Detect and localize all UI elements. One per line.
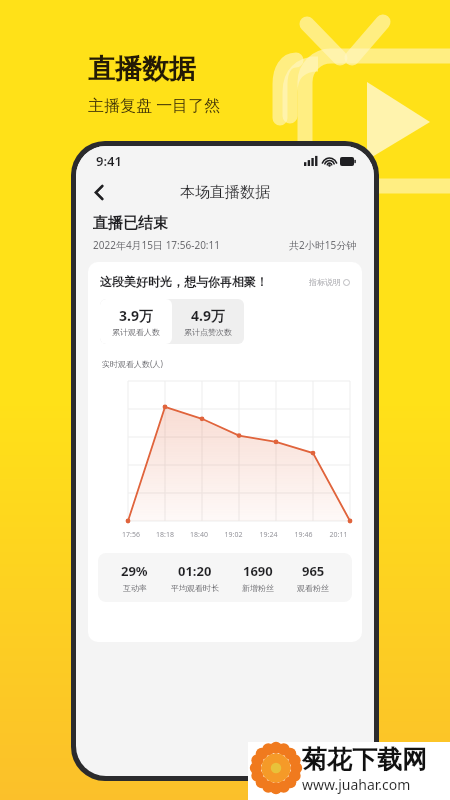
staticText: 这段美好时光，想与你再相聚！ <box>100 274 268 289</box>
button[interactable]: 01:20 <box>171 562 219 593</box>
button[interactable]: 4.9万 <box>172 299 244 344</box>
button[interactable]: 965 <box>297 562 329 593</box>
staticText: 20:11 <box>321 530 356 540</box>
staticText: 17:56 <box>114 530 148 540</box>
staticText: 实时观看人数(人) <box>102 358 163 369</box>
staticText: 18:18 <box>148 530 182 540</box>
staticText: 主播复盘 一目了然 <box>88 94 221 116</box>
staticText: 19:02 <box>216 530 251 540</box>
staticText: 2022年4月15日 17:56-20:11 <box>93 238 220 252</box>
staticText: 01:20 <box>178 562 212 580</box>
staticText: 观看粉丝 <box>297 583 329 593</box>
staticText: 29% <box>121 562 148 580</box>
staticText: 累计观看人数 <box>112 327 160 337</box>
staticText: 直播已结束 <box>93 214 168 233</box>
button[interactable]: 29% <box>121 562 148 593</box>
staticText: 互动率 <box>123 583 147 593</box>
button[interactable]: 指标说明 <box>309 277 350 287</box>
staticText: 指标说明 <box>309 277 341 287</box>
staticText: 新增粉丝 <box>242 583 274 593</box>
staticText: 3.9万 <box>119 306 153 325</box>
staticText: 9:41 <box>96 152 122 170</box>
staticText: 共2小时15分钟 <box>289 238 357 252</box>
staticText: 平均观看时长 <box>171 583 219 593</box>
staticText: 19:46 <box>286 530 321 540</box>
staticText: 965 <box>302 562 325 580</box>
staticText: 本场直播数据 <box>180 183 270 202</box>
staticText: 1690 <box>243 562 273 580</box>
staticText: 累计点赞次数 <box>184 327 232 337</box>
staticText: www.juahar.com <box>302 775 411 794</box>
button[interactable]: 3.9万 <box>100 299 172 344</box>
staticText: 菊花下载网 <box>302 744 427 775</box>
staticText: 4.9万 <box>191 306 225 325</box>
staticText: 直播数据 <box>88 52 196 86</box>
staticText: 19:24 <box>251 530 286 540</box>
staticText: 18:40 <box>182 530 216 540</box>
button[interactable]: Back <box>84 177 114 207</box>
button[interactable]: 1690 <box>242 562 274 593</box>
